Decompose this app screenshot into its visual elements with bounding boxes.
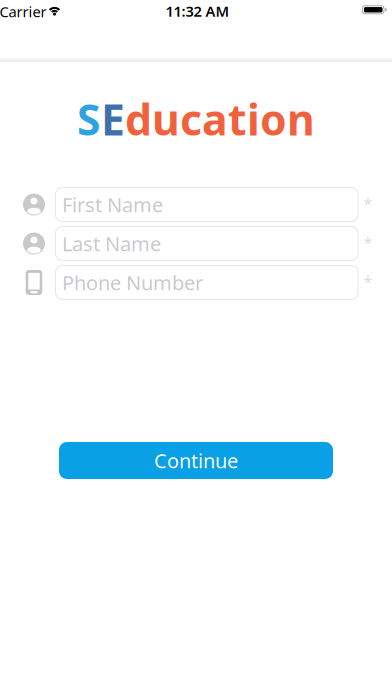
staticText: Continue — [154, 447, 238, 474]
button[interactable]: First Name — [55, 187, 358, 222]
staticText: 11:32 AM — [165, 1, 229, 21]
staticText: * — [363, 271, 372, 292]
button[interactable]: Last Name — [55, 226, 358, 261]
button[interactable]: Continue — [59, 442, 333, 479]
staticText: * — [363, 193, 372, 214]
staticText: Last Name — [62, 230, 161, 257]
staticText: Phone Number — [62, 269, 203, 296]
staticText: E — [101, 91, 125, 147]
staticText: S — [77, 91, 101, 147]
staticText: * — [363, 232, 372, 253]
staticText: First Name — [62, 191, 163, 218]
staticText: ducation — [125, 91, 315, 147]
staticText: Carrier — [0, 2, 46, 21]
button[interactable]: Phone Number — [55, 265, 358, 300]
